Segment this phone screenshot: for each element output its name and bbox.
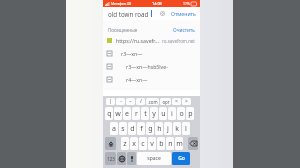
button[interactable]: l [182,122,190,135]
button[interactable]: s [119,122,127,135]
staticText: https://ru.savefr... [116,37,159,44]
button[interactable]: i [168,107,176,120]
staticText: e [125,109,129,119]
button[interactable]: p [186,107,194,120]
button[interactable]: Clear text [158,9,167,18]
staticText: x [132,139,136,149]
staticText: s [121,124,125,134]
staticText: n [168,139,173,149]
staticText: g [148,124,153,134]
button[interactable]: Shift [105,137,116,150]
button[interactable]: b [157,137,165,150]
staticText: j [167,124,169,134]
button[interactable]: t [141,107,149,120]
button[interactable]: d [128,122,136,135]
button[interactable]: k [173,122,181,135]
staticText: space [147,155,161,162]
button[interactable]: < [172,98,181,105]
staticText: a [112,124,116,134]
staticText: b [159,139,164,149]
staticText: h [157,124,162,134]
staticText: u [161,109,166,119]
staticText: r [135,109,138,119]
button[interactable]: n [166,137,174,150]
staticText: t [144,109,147,119]
button[interactable]: / [136,98,145,105]
button[interactable]: 123 [105,152,116,165]
button[interactable]: Go [172,152,190,165]
button[interactable]: r4—xn—l3osefr1l.googlevideo.com [103,73,200,86]
button[interactable]: z [121,137,129,150]
button[interactable]: Backspace [188,137,198,150]
staticText: / [140,98,142,105]
button[interactable]: r3—xn—n8-7cnk.googlevideo.com [103,47,200,60]
staticText: > [185,98,188,105]
staticText: d [130,124,135,134]
staticText: q [107,109,112,119]
staticText: Go [178,155,185,162]
staticText: l [185,124,187,134]
staticText: w [115,109,121,119]
button[interactable]: w [114,107,122,120]
button[interactable]: g [146,122,154,135]
staticText: i [171,109,173,119]
staticText: орг [162,99,170,105]
staticText: Посещенные [108,27,138,33]
button[interactable]: https://ru.savefr... [103,34,200,47]
button[interactable]: u [159,107,167,120]
button[interactable]: o [177,107,185,120]
staticText: r3—xn—n8-7cnk.googlevideo.com [121,50,200,57]
staticText: k [175,124,179,134]
button[interactable]: q [105,107,113,120]
button[interactable]: .com [146,98,159,105]
staticText: f [140,124,143,134]
button[interactable]: > [182,98,191,105]
staticText: c [141,139,145,149]
button[interactable]: - [116,98,125,105]
staticText: r3—xn—hsb5lve-l5lla.googlevide... [126,63,200,70]
staticText: Мегафон 4G [111,1,132,6]
staticText: p [188,109,193,119]
button[interactable]: r3—xn—hsb5lve-l5lla.googlevide... [103,60,200,73]
button[interactable]: a [110,122,118,135]
button[interactable]: v [148,137,156,150]
button[interactable]: y [150,107,158,120]
button[interactable]: e [123,107,131,120]
staticText: ru.savefrom.net [162,38,195,44]
staticText: old town road [108,10,149,18]
staticText: < [175,98,178,105]
button[interactable]: space [137,152,171,165]
button[interactable]: r [132,107,140,120]
button[interactable]: c [139,137,147,150]
button[interactable]: m [175,137,183,150]
button[interactable]: Очистить [171,25,197,34]
staticText: Очистить [173,27,195,32]
button[interactable]: j [164,122,172,135]
staticText: r4—xn—l3osefr1l.googlevideo.com [126,76,200,83]
staticText: m [176,139,183,149]
button[interactable]: Отменить [169,7,198,20]
staticText: y [152,109,156,119]
staticText: 14:08 [152,1,162,6]
button[interactable]: орг [160,98,171,105]
staticText: 17% [183,1,190,6]
button[interactable]: f [137,122,145,135]
button[interactable]: | [106,98,115,105]
button[interactable]: Switch language [117,152,126,165]
staticText: .com [147,99,158,105]
staticText: z [123,139,127,149]
button[interactable]: x [130,137,138,150]
button[interactable]: Dictation [127,152,136,165]
staticText: ~ [129,98,132,105]
staticText: o [179,109,184,119]
button[interactable]: h [155,122,163,135]
staticText: Отменить [171,10,196,17]
staticText: - [120,98,122,105]
button[interactable]: ~ [126,98,135,105]
staticText: v [150,139,154,149]
staticText: | [109,98,112,105]
staticText: 123 [107,156,115,162]
